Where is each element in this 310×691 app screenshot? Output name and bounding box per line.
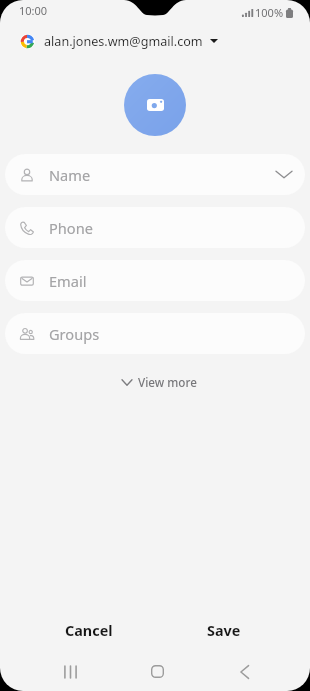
button[interactable]: Recents: [52, 654, 88, 689]
staticText: alan.jones.wm@gmail.com: [44, 33, 203, 50]
staticText: Groups: [49, 324, 100, 344]
button[interactable]: Phone: [5, 207, 305, 248]
staticText: 10:00: [19, 3, 48, 18]
button[interactable]: Name: [5, 154, 305, 195]
button[interactable]: Save: [156, 611, 291, 651]
button[interactable]: Email: [5, 260, 305, 301]
button[interactable]: Home: [139, 654, 175, 689]
button[interactable]: alan.jones.wm@gmail.com: [0, 28, 310, 54]
button[interactable]: Cancel: [21, 611, 156, 651]
button[interactable]: View more: [112, 369, 207, 395]
staticText: Save: [207, 621, 241, 641]
button[interactable]: Add photo: [124, 74, 186, 136]
staticText: Cancel: [65, 621, 113, 641]
staticText: 100%: [255, 5, 284, 20]
staticText: Email: [49, 271, 87, 291]
button[interactable]: Groups: [5, 313, 305, 354]
button[interactable]: Back: [226, 654, 262, 689]
staticText: Name: [49, 165, 91, 185]
staticText: Phone: [49, 218, 93, 238]
staticText: View more: [138, 374, 197, 390]
